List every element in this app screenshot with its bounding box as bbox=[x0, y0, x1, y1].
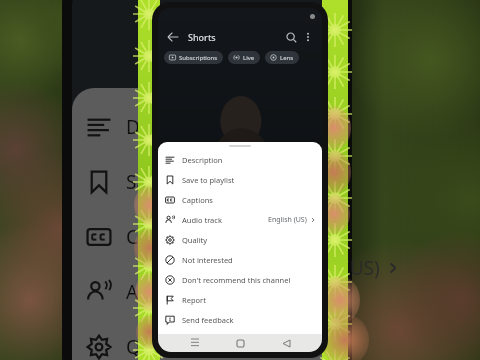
staticText: Shorts bbox=[188, 31, 216, 43]
button[interactable]: Send feedback bbox=[158, 310, 322, 330]
button[interactable]: Description bbox=[158, 150, 322, 170]
button[interactable]: Report bbox=[158, 290, 322, 310]
button[interactable]: Subscriptions bbox=[164, 51, 223, 64]
button[interactable]: More options bbox=[300, 29, 316, 45]
staticText: Don't recommend this channel bbox=[182, 275, 291, 285]
button[interactable]: Home bbox=[231, 334, 249, 352]
staticText: Ca bbox=[126, 224, 149, 250]
button[interactable]: Audio track bbox=[158, 210, 322, 230]
staticText: Quality bbox=[182, 235, 208, 245]
staticText: Report bbox=[182, 295, 206, 305]
button[interactable]: Not interested bbox=[158, 250, 322, 270]
staticText: Au bbox=[126, 279, 150, 305]
button[interactable]: Save to playlist bbox=[158, 170, 322, 190]
staticText: Captions bbox=[182, 195, 213, 205]
button[interactable]: Captions bbox=[158, 190, 322, 210]
button[interactable]: Lens bbox=[265, 51, 299, 64]
staticText: (US) bbox=[344, 255, 380, 281]
staticText: Not interested bbox=[182, 255, 233, 265]
staticText: Send feedback bbox=[182, 315, 234, 325]
staticText: Lens bbox=[280, 54, 294, 62]
staticText: Subscriptions bbox=[179, 54, 218, 62]
staticText: Audio track bbox=[182, 215, 222, 225]
staticText: Live bbox=[243, 54, 255, 62]
button[interactable]: Back bbox=[164, 28, 182, 46]
staticText: De bbox=[126, 114, 151, 140]
staticText: Save to playlist bbox=[182, 175, 235, 185]
staticText: Qu bbox=[126, 334, 153, 360]
button[interactable]: Don't recommend this channel bbox=[158, 270, 322, 290]
staticText: Description bbox=[182, 155, 223, 165]
button[interactable]: Quality bbox=[158, 230, 322, 250]
button[interactable]: Back bbox=[277, 334, 295, 352]
button[interactable]: Recents bbox=[186, 334, 204, 352]
button[interactable]: Search bbox=[282, 28, 300, 46]
button[interactable]: Live bbox=[228, 51, 260, 64]
staticText: Sa bbox=[126, 169, 148, 195]
staticText: English (US) bbox=[268, 215, 307, 225]
